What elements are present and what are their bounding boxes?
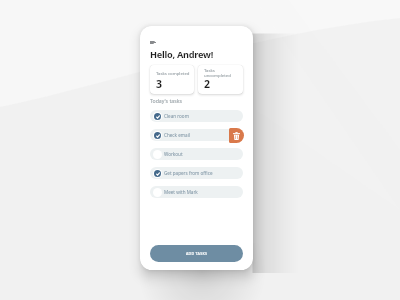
staticText: Check email [164, 132, 191, 138]
staticText: ADD TASKS [186, 251, 208, 256]
staticText: Meet with Mark [164, 189, 198, 195]
staticText: Today's tasks [150, 97, 182, 104]
staticText: Clean room [164, 113, 189, 119]
staticText: Hello, Andrew! [150, 48, 214, 61]
staticText: Get papers from office [164, 170, 213, 176]
staticText: 3 [156, 77, 163, 91]
staticText: Workout [164, 151, 183, 157]
button[interactable]: Meet with Mark [150, 186, 243, 198]
button[interactable]: Delete [229, 128, 244, 143]
staticText: 2 [204, 77, 211, 91]
button[interactable]: Clean room [150, 110, 243, 122]
button[interactable]: Menu [150, 41, 156, 44]
button[interactable]: Tasks uncompleted [198, 65, 243, 94]
staticText: Tasks completed [156, 70, 191, 76]
staticText: Tasks uncompleted [204, 67, 240, 79]
button[interactable]: Workout [150, 148, 243, 160]
button[interactable]: Get papers from office [150, 167, 243, 179]
button[interactable]: ADD TASKS [150, 245, 243, 262]
button[interactable]: Check email [150, 129, 243, 141]
button[interactable]: Tasks completed [150, 65, 194, 94]
